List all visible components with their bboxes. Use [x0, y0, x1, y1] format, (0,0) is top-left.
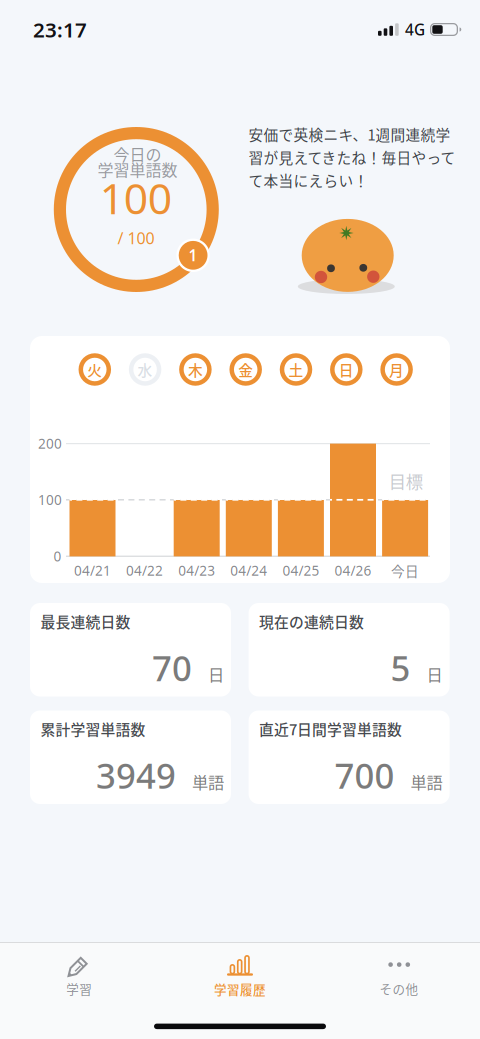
staticText: 最長連続日数: [40, 610, 130, 632]
staticText: 月: [389, 359, 404, 380]
staticText: 100: [38, 490, 62, 509]
staticText: 日: [339, 359, 354, 380]
staticText: 現在の連続日数: [259, 610, 364, 632]
staticText: 学習: [66, 979, 92, 997]
staticText: 04/21: [74, 561, 111, 580]
staticText: 100: [100, 169, 172, 227]
staticText: 1: [189, 245, 198, 266]
staticText: 水: [138, 359, 153, 380]
staticText: 日: [427, 662, 443, 686]
staticText: その他: [379, 979, 418, 997]
staticText: 70: [152, 644, 192, 691]
staticText: 学習単語数: [97, 158, 177, 181]
staticText: 200: [38, 434, 62, 453]
staticText: 4G: [405, 19, 425, 40]
staticText: 700: [335, 752, 395, 799]
staticText: 5: [391, 644, 411, 691]
staticText: 04/22: [126, 561, 163, 580]
staticText: 今日の: [113, 142, 161, 166]
staticText: 単語: [411, 770, 443, 794]
staticText: 3949: [96, 752, 176, 799]
staticText: 直近7日間学習単語数: [259, 718, 402, 739]
staticText: 累計学習単語数: [40, 718, 145, 739]
staticText: 木: [188, 359, 203, 380]
staticText: 日: [208, 662, 224, 686]
staticText: 習が見えてきたね！毎日やって: [248, 146, 455, 168]
staticText: 学習履歴: [214, 980, 266, 998]
staticText: 単語: [192, 770, 224, 794]
staticText: 土: [288, 359, 303, 380]
staticText: 04/26: [334, 561, 371, 580]
staticText: 金: [238, 359, 253, 380]
staticText: 安価で英検ニキ、1週間連続学: [248, 123, 450, 145]
staticText: 04/25: [282, 561, 319, 580]
staticText: 今日: [391, 561, 419, 580]
staticText: 火: [87, 359, 102, 380]
staticText: 目標: [389, 468, 423, 494]
staticText: て本当にえらい！: [248, 169, 368, 191]
staticText: 23:17: [33, 15, 87, 43]
staticText: 0: [53, 547, 61, 565]
staticText: 04/23: [178, 561, 215, 580]
staticText: 04/24: [230, 561, 267, 580]
staticText: / 100: [117, 227, 154, 249]
